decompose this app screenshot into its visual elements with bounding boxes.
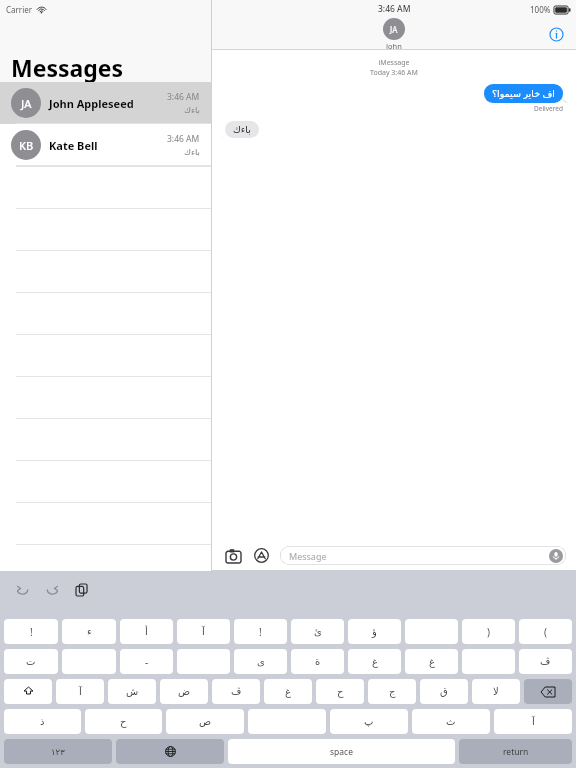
staticText: ح xyxy=(337,686,344,698)
button[interactable]: ى xyxy=(234,649,287,674)
staticText: ئ xyxy=(314,626,322,638)
staticText: ذ xyxy=(40,716,45,728)
button[interactable]: Details xyxy=(546,24,566,44)
button[interactable] xyxy=(524,679,572,704)
button[interactable]: ث xyxy=(412,709,490,734)
button[interactable]: ( xyxy=(519,619,572,644)
button[interactable]: Paste xyxy=(72,580,92,600)
button[interactable] xyxy=(62,649,116,674)
button[interactable]: Record audio xyxy=(549,549,563,563)
button[interactable]: لا xyxy=(472,679,520,704)
button[interactable]: - xyxy=(120,649,173,674)
staticText: ش xyxy=(126,686,139,698)
button[interactable]: ! xyxy=(234,619,287,644)
staticText: Carrier xyxy=(6,4,33,15)
button[interactable]: ء xyxy=(62,619,116,644)
staticText: 3:46 AM xyxy=(167,133,200,145)
staticText: آ xyxy=(532,716,535,728)
button[interactable]: Message xyxy=(280,546,566,565)
button[interactable]: غ xyxy=(264,679,312,704)
button[interactable]: غ xyxy=(405,649,458,674)
staticText: Messages xyxy=(11,52,124,82)
button[interactable]: KB xyxy=(0,124,211,166)
staticText: ح xyxy=(120,716,127,728)
staticText: return xyxy=(503,746,529,758)
button[interactable]: غ xyxy=(348,649,401,674)
staticText: ڤ xyxy=(540,656,551,668)
staticText: ق xyxy=(440,686,448,698)
button[interactable]: پ xyxy=(330,709,408,734)
button[interactable]: App Store xyxy=(250,544,272,566)
button[interactable]: آ xyxy=(56,679,104,704)
button[interactable] xyxy=(177,649,230,674)
staticText: ث xyxy=(446,716,456,728)
staticText: - xyxy=(145,655,149,669)
button[interactable]: ص xyxy=(166,709,244,734)
staticText: باءك xyxy=(233,124,251,135)
button[interactable] xyxy=(116,739,224,764)
button[interactable]: ! xyxy=(4,619,58,644)
staticText: JA xyxy=(390,24,398,35)
button[interactable]: ش xyxy=(108,679,156,704)
button[interactable]: ض xyxy=(160,679,208,704)
button[interactable]: ة xyxy=(291,649,344,674)
button[interactable]: space xyxy=(228,739,455,764)
staticText: پ xyxy=(364,716,374,728)
staticText: Kate Bell xyxy=(49,138,98,153)
button[interactable] xyxy=(4,679,52,704)
staticText: ص xyxy=(199,716,212,728)
button[interactable]: ؤ xyxy=(348,619,401,644)
staticText: space xyxy=(330,746,353,758)
button[interactable]: آ xyxy=(494,709,572,734)
staticText: 100% xyxy=(530,4,551,15)
staticText: John Appleseed xyxy=(49,96,134,111)
button[interactable]: return xyxy=(459,739,572,764)
button[interactable]: ذ xyxy=(4,709,81,734)
staticText: ت xyxy=(26,656,36,668)
button[interactable]: ج xyxy=(368,679,416,704)
button[interactable]: ت xyxy=(4,649,58,674)
button[interactable] xyxy=(405,619,458,644)
staticText: أ xyxy=(145,626,148,638)
staticText: غ xyxy=(429,656,435,668)
staticText: ض xyxy=(178,686,191,698)
staticText: ! xyxy=(30,625,33,639)
button[interactable]: آ xyxy=(177,619,230,644)
button[interactable]: ح xyxy=(85,709,162,734)
button[interactable] xyxy=(462,649,515,674)
staticText: ( xyxy=(544,625,547,639)
button[interactable]: باءك xyxy=(233,124,251,135)
staticText: ) xyxy=(487,625,490,639)
staticText: ج xyxy=(389,686,396,698)
button[interactable] xyxy=(248,709,326,734)
button[interactable]: ) xyxy=(462,619,515,644)
staticText: 3:46 AM xyxy=(167,91,200,103)
staticText: ء xyxy=(87,626,92,638)
button[interactable]: أ xyxy=(120,619,173,644)
button[interactable]: ڤ xyxy=(212,679,260,704)
button[interactable]: ڤ xyxy=(519,649,572,674)
staticText: لا xyxy=(493,686,499,698)
button[interactable]: JA xyxy=(0,82,211,124)
staticText: غ xyxy=(285,686,291,698)
staticText: ى xyxy=(257,656,265,668)
button[interactable]: Undo xyxy=(12,580,32,600)
staticText: Today 3:46 AM xyxy=(212,68,576,78)
staticText: ؤ xyxy=(372,626,377,638)
button[interactable]: اف خاير سيموا؟ xyxy=(492,87,555,100)
staticText: ! xyxy=(259,625,262,639)
staticText: ڤ xyxy=(231,686,242,698)
button[interactable]: ح xyxy=(316,679,364,704)
staticText: John xyxy=(386,41,402,49)
button[interactable]: ١٢٣ xyxy=(4,739,112,764)
button[interactable]: Redo xyxy=(42,580,62,600)
staticText: 3:46 AM xyxy=(378,3,411,15)
button[interactable]: ق xyxy=(420,679,468,704)
button[interactable]: Camera xyxy=(222,544,244,566)
staticText: Delivered xyxy=(534,104,563,113)
staticText: باءك xyxy=(184,147,200,157)
button[interactable]: ئ xyxy=(291,619,344,644)
staticText: iMessage xyxy=(212,58,576,68)
staticText: آ xyxy=(79,686,82,698)
staticText: ١٢٣ xyxy=(51,747,65,757)
